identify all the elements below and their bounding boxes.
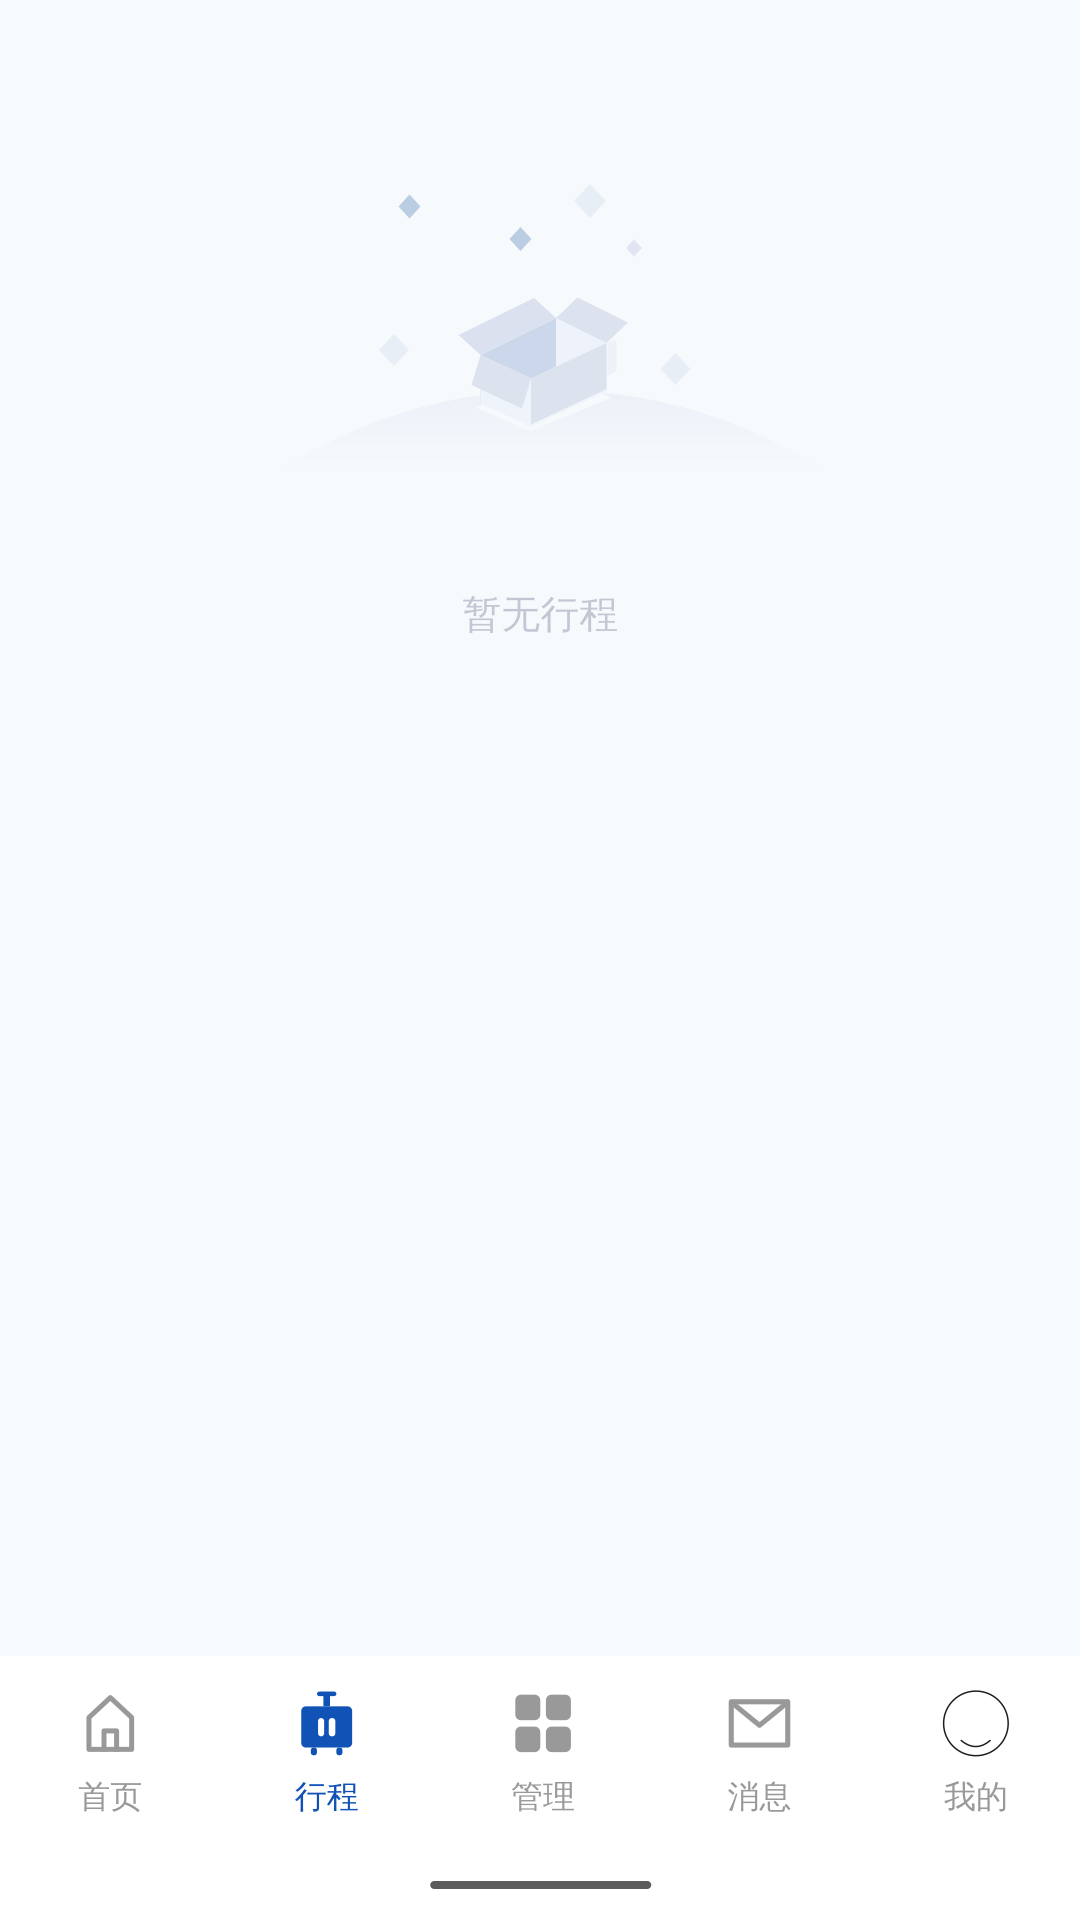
button[interactable]: 消息	[651, 1656, 867, 1826]
staticText: 我的	[944, 1777, 1008, 1816]
staticText: 管理	[511, 1777, 575, 1816]
button[interactable]: 行程	[219, 1656, 435, 1826]
staticText: 行程	[295, 1777, 359, 1816]
button[interactable]: 我的	[868, 1656, 1080, 1826]
button[interactable]: 首页	[2, 1656, 218, 1826]
staticText: 暂无行程	[462, 591, 618, 638]
staticText: 消息	[727, 1777, 791, 1816]
button[interactable]: 管理	[435, 1656, 651, 1826]
staticText: 首页	[78, 1777, 142, 1816]
